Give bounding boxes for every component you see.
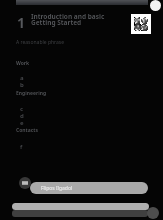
- button[interactable]: Play: [147, 207, 159, 219]
- staticText: A reasonable phrase: [16, 39, 65, 46]
- button[interactable]: [16, 0, 148, 5]
- staticText: Flipos Ilgadol: [41, 185, 73, 192]
- button[interactable]: QR code: [131, 14, 151, 34]
- button[interactable]: Profile: [150, 0, 161, 11]
- button[interactable]: a: [20, 74, 24, 82]
- staticText: Engineering: [16, 90, 47, 97]
- staticText: Introduction and basic: [31, 12, 105, 21]
- button[interactable]: [12, 210, 148, 217]
- staticText: Getting Started: [31, 18, 82, 27]
- button[interactable]: e: [20, 119, 24, 127]
- staticText: Work: [16, 60, 30, 67]
- staticText: 1: [17, 13, 26, 32]
- button[interactable]: f: [20, 143, 23, 151]
- button[interactable]: d: [20, 112, 24, 120]
- button[interactable]: c: [20, 105, 24, 113]
- staticText: Contacts: [16, 127, 39, 134]
- button[interactable]: Avatar: [19, 177, 31, 189]
- button[interactable]: b: [20, 81, 24, 89]
- button[interactable]: Flipos Ilgadol: [30, 182, 148, 194]
- button[interactable]: [12, 203, 149, 210]
